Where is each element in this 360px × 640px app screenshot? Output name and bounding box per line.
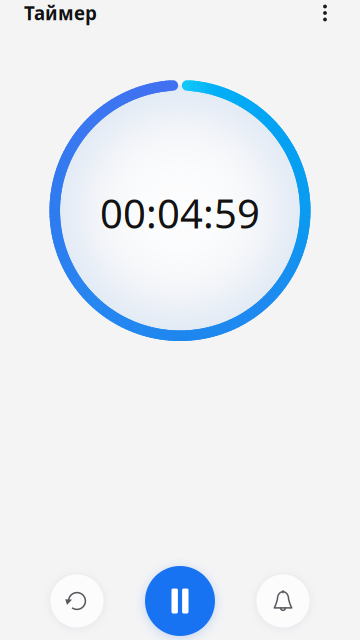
button[interactable]: Pause: [145, 566, 215, 636]
staticText: Таймер: [24, 1, 97, 25]
button[interactable]: Alarm sound: [256, 574, 309, 627]
staticText: 00:04:59: [100, 186, 260, 239]
button[interactable]: More options: [311, 0, 339, 27]
button[interactable]: Reset: [50, 574, 103, 627]
